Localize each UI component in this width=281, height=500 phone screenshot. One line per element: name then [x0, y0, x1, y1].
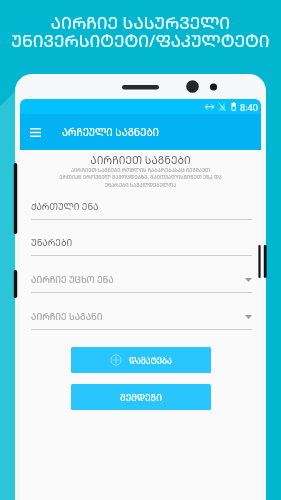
button[interactable]: ᲣᲜᲐᲠᲔᲑᲘ	[31, 221, 252, 256]
staticText: ᲐᲘᲠᲩᲘᲔᲗ ᲡᲐᲒᲜᲔᲑᲘ ᲠᲝᲛᲚᲘᲡ ᲩᲐᲑᲐᲠᲔᲑᲐᲡᲐᲪ ᲒᲔᲒᲛᲐ…	[20, 166, 261, 189]
button[interactable]: ᲥᲐᲠᲗᲣᲚᲘ ᲔᲜᲐ	[31, 185, 252, 220]
button[interactable]: ᲓᲐᲛᲐᲢᲔᲑᲐ	[71, 347, 211, 373]
staticText: ᲥᲐᲠᲗᲣᲚᲘ ᲔᲜᲐ	[31, 200, 99, 212]
staticText: ᲐᲘᲠᲩᲘᲔᲗ ᲡᲐᲒᲜᲔᲑᲘ	[20, 153, 261, 167]
button[interactable]: ᲐᲘᲠᲩᲘᲔ ᲡᲐᲒᲐᲜᲘ	[31, 295, 252, 330]
staticText: ᲓᲐᲛᲐᲢᲔᲑᲐ	[129, 355, 172, 366]
button[interactable]: Open navigation menu	[22, 114, 48, 150]
staticText: 8:40	[240, 101, 258, 113]
staticText: ᲐᲠᲩᲔᲣᲚᲘ ᲡᲐᲒᲜᲔᲑᲘ	[62, 125, 159, 139]
staticText: ᲨᲔᲛᲓᲔᲒᲘ	[120, 391, 162, 403]
staticText: ᲐᲘᲠᲩᲘᲔ ᲣᲪᲮᲝ ᲔᲜᲐ	[31, 273, 114, 285]
staticText: ᲐᲘᲠᲩᲘᲔ ᲡᲐᲡᲣᲠᲕᲔᲚᲘ ᲣᲜᲘᲕᲔᲠᲡᲘᲢᲔᲢᲘ/ᲤᲐᲙᲣᲚᲢᲔᲢᲘ	[0, 11, 281, 52]
staticText: ᲣᲜᲐᲠᲔᲑᲘ	[31, 236, 73, 248]
button[interactable]: ᲨᲔᲛᲓᲔᲒᲘ	[71, 384, 211, 410]
button[interactable]: ᲐᲘᲠᲩᲘᲔ ᲣᲪᲮᲝ ᲔᲜᲐ	[31, 258, 252, 293]
staticText: ᲐᲘᲠᲩᲘᲔ ᲡᲐᲒᲐᲜᲘ	[31, 310, 103, 322]
